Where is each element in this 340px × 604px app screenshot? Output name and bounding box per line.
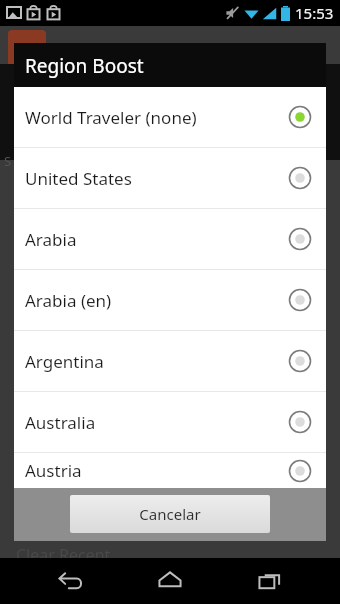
button[interactable]: Recent apps bbox=[240, 558, 300, 604]
staticText: Region Boost bbox=[25, 53, 144, 79]
staticText: 15:53 bbox=[295, 3, 334, 23]
button[interactable]: Austria bbox=[14, 453, 326, 488]
button[interactable]: Arabia (en) bbox=[14, 270, 326, 330]
button[interactable]: United States bbox=[14, 148, 326, 208]
staticText: United States bbox=[25, 167, 288, 190]
staticText: S bbox=[4, 152, 12, 170]
button[interactable]: Back bbox=[40, 558, 100, 604]
button[interactable]: Arabia bbox=[14, 209, 326, 269]
button[interactable]: World Traveler (none) bbox=[14, 87, 326, 147]
button[interactable]: Argentina bbox=[14, 331, 326, 391]
staticText: Argentina bbox=[25, 350, 288, 373]
staticText: World Traveler (none) bbox=[25, 106, 288, 129]
button[interactable]: Home bbox=[140, 558, 200, 604]
staticText: Cancelar bbox=[139, 504, 201, 524]
staticText: Arabia (en) bbox=[25, 289, 288, 312]
button[interactable]: Cancelar bbox=[70, 495, 270, 533]
staticText: Clear Recent bbox=[16, 544, 111, 566]
staticText: Arabia bbox=[25, 228, 288, 251]
staticText: Australia bbox=[25, 411, 288, 434]
staticText: Austria bbox=[25, 459, 288, 482]
button[interactable]: Australia bbox=[14, 392, 326, 452]
